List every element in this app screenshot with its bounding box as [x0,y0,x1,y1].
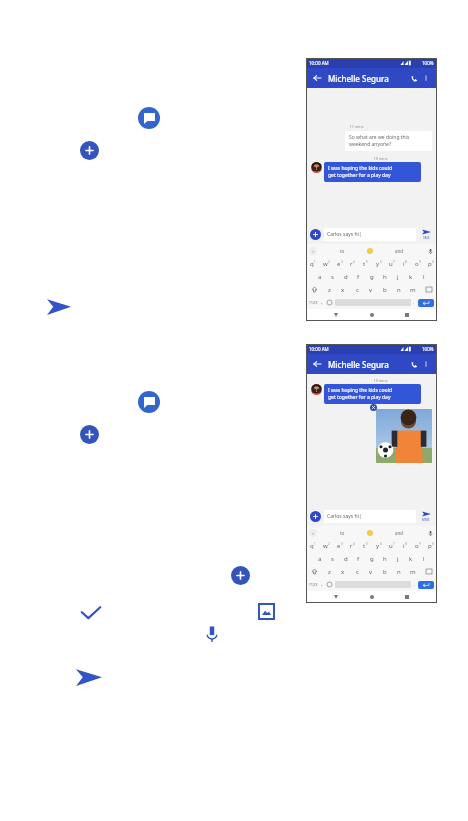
button[interactable]: Home [367,310,377,320]
button[interactable]: m [406,283,420,296]
button[interactable]: Insert image [258,603,275,620]
button[interactable]: f [352,270,365,283]
button[interactable]: Back [311,358,323,370]
button[interactable]: Back [311,72,323,84]
button[interactable]: Carlos says hi| [327,228,413,241]
button[interactable]: y [372,257,385,270]
button[interactable]: and [395,248,404,254]
button[interactable]: Home [367,592,377,602]
button[interactable]: Remove attachment [370,404,377,411]
button[interactable]: t [359,539,372,552]
button[interactable]: a [313,270,326,283]
button[interactable]: Send [47,298,71,317]
button[interactable]: w [320,539,333,552]
button[interactable]: u [385,257,398,270]
button[interactable]: Enter [418,299,434,307]
button[interactable]: Confirm [80,605,102,621]
button[interactable]: . [413,299,415,306]
button[interactable]: v [364,283,378,296]
button[interactable]: Call [408,72,420,84]
button[interactable]: Shift [306,283,322,296]
button[interactable]: a [313,552,326,565]
button[interactable]: e [333,539,346,552]
button[interactable]: p [424,257,437,270]
button[interactable]: s [326,270,339,283]
button[interactable]: o [411,539,424,552]
button[interactable]: p [424,539,437,552]
button[interactable]: x [336,565,350,578]
button[interactable]: f [352,552,365,565]
button[interactable]: l [417,552,430,565]
button[interactable]: Add [80,141,99,160]
button[interactable]: Voice input [426,529,434,537]
button[interactable]: w [320,257,333,270]
button[interactable]: Expand [309,247,317,255]
button[interactable]: ?123 [309,300,318,305]
button[interactable]: u [385,539,398,552]
button[interactable]: q [306,539,320,552]
button[interactable]: j [391,552,404,565]
button[interactable]: Call [408,358,420,370]
button[interactable]: n [392,565,406,578]
button[interactable]: and [395,530,404,536]
button[interactable]: . [413,581,415,588]
button[interactable]: k [404,552,417,565]
button[interactable]: to [340,530,345,536]
button[interactable]: , [321,299,323,306]
button[interactable]: s [326,552,339,565]
button[interactable]: m [406,565,420,578]
button[interactable]: Messages app [138,107,160,129]
button[interactable]: d [339,552,352,565]
button[interactable]: Add [80,425,99,444]
button[interactable]: b [378,283,392,296]
button[interactable]: j [391,270,404,283]
button[interactable]: Send [419,511,433,522]
button[interactable]: b [378,565,392,578]
button[interactable]: c [350,283,364,296]
button[interactable]: More options [420,72,432,84]
button[interactable]: Recents [402,592,412,602]
button[interactable]: Back [331,592,341,602]
button[interactable]: Voice input [205,625,219,643]
button[interactable]: Add [231,566,250,585]
button[interactable]: z [322,565,336,578]
button[interactable]: Voice input [426,247,434,255]
button[interactable]: Carlos says hi| [327,510,413,523]
button[interactable]: n [392,283,406,296]
button[interactable]: r [346,257,359,270]
button[interactable]: h [378,270,391,283]
button[interactable]: I was hoping the kids could get together… [328,165,417,179]
button[interactable]: Send [76,668,102,688]
button[interactable]: Delete [420,283,437,296]
button[interactable]: Send [419,229,433,240]
button[interactable]: Emoji [326,299,333,306]
button[interactable]: , [321,581,323,588]
button[interactable]: z [322,283,336,296]
button[interactable]: g [365,552,378,565]
button[interactable]: ?123 [309,582,318,587]
button[interactable]: i [398,257,411,270]
button[interactable]: x [336,283,350,296]
button[interactable]: k [404,270,417,283]
button[interactable]: to [340,248,345,254]
button[interactable]: r [346,539,359,552]
button[interactable]: Back [331,310,341,320]
button[interactable]: Enter [418,581,434,589]
button[interactable]: Delete [420,565,437,578]
button[interactable]: Messages app [138,391,160,413]
button[interactable]: More options [420,358,432,370]
button[interactable]: c [350,565,364,578]
button[interactable]: Add attachment [310,511,321,522]
button[interactable]: l [417,270,430,283]
button[interactable]: q [306,257,320,270]
button[interactable]: Emoji [326,581,333,588]
button[interactable]: Add attachment [310,229,321,240]
button[interactable]: h [378,552,391,565]
button[interactable]: d [339,270,352,283]
button[interactable]: Expand [309,529,317,537]
button[interactable]: e [333,257,346,270]
button[interactable]: y [372,539,385,552]
button[interactable]: Recents [402,310,412,320]
